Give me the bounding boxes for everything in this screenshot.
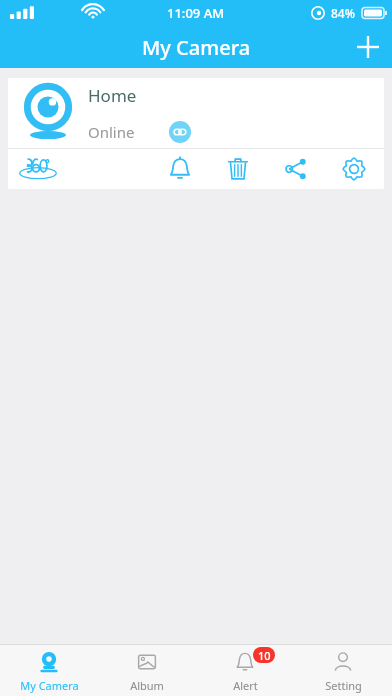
button[interactable]: Home [8, 78, 384, 148]
staticText: 84% [331, 5, 355, 21]
button[interactable]: My Camera [0, 645, 98, 696]
staticText: Online [88, 122, 135, 142]
button[interactable]: Share link [169, 121, 191, 143]
staticText: 11:09 AM [167, 4, 225, 22]
staticText: My Camera [142, 34, 251, 61]
button[interactable]: Album [98, 645, 196, 696]
button[interactable]: Share [276, 149, 316, 189]
button[interactable]: 360 view [8, 149, 68, 189]
button[interactable]: Setting [294, 645, 392, 696]
staticText: My Camera [20, 678, 79, 693]
staticText: Setting [325, 678, 362, 693]
button[interactable]: Delete [218, 149, 258, 189]
staticText: 10 [258, 648, 271, 663]
staticText: Home [88, 84, 137, 107]
staticText: Alert [233, 678, 258, 693]
staticText: Album [130, 678, 164, 693]
button[interactable]: Add camera [350, 26, 392, 68]
button[interactable]: Notifications [160, 149, 200, 189]
button[interactable]: 10 [196, 645, 294, 696]
button[interactable]: Settings [334, 149, 374, 189]
